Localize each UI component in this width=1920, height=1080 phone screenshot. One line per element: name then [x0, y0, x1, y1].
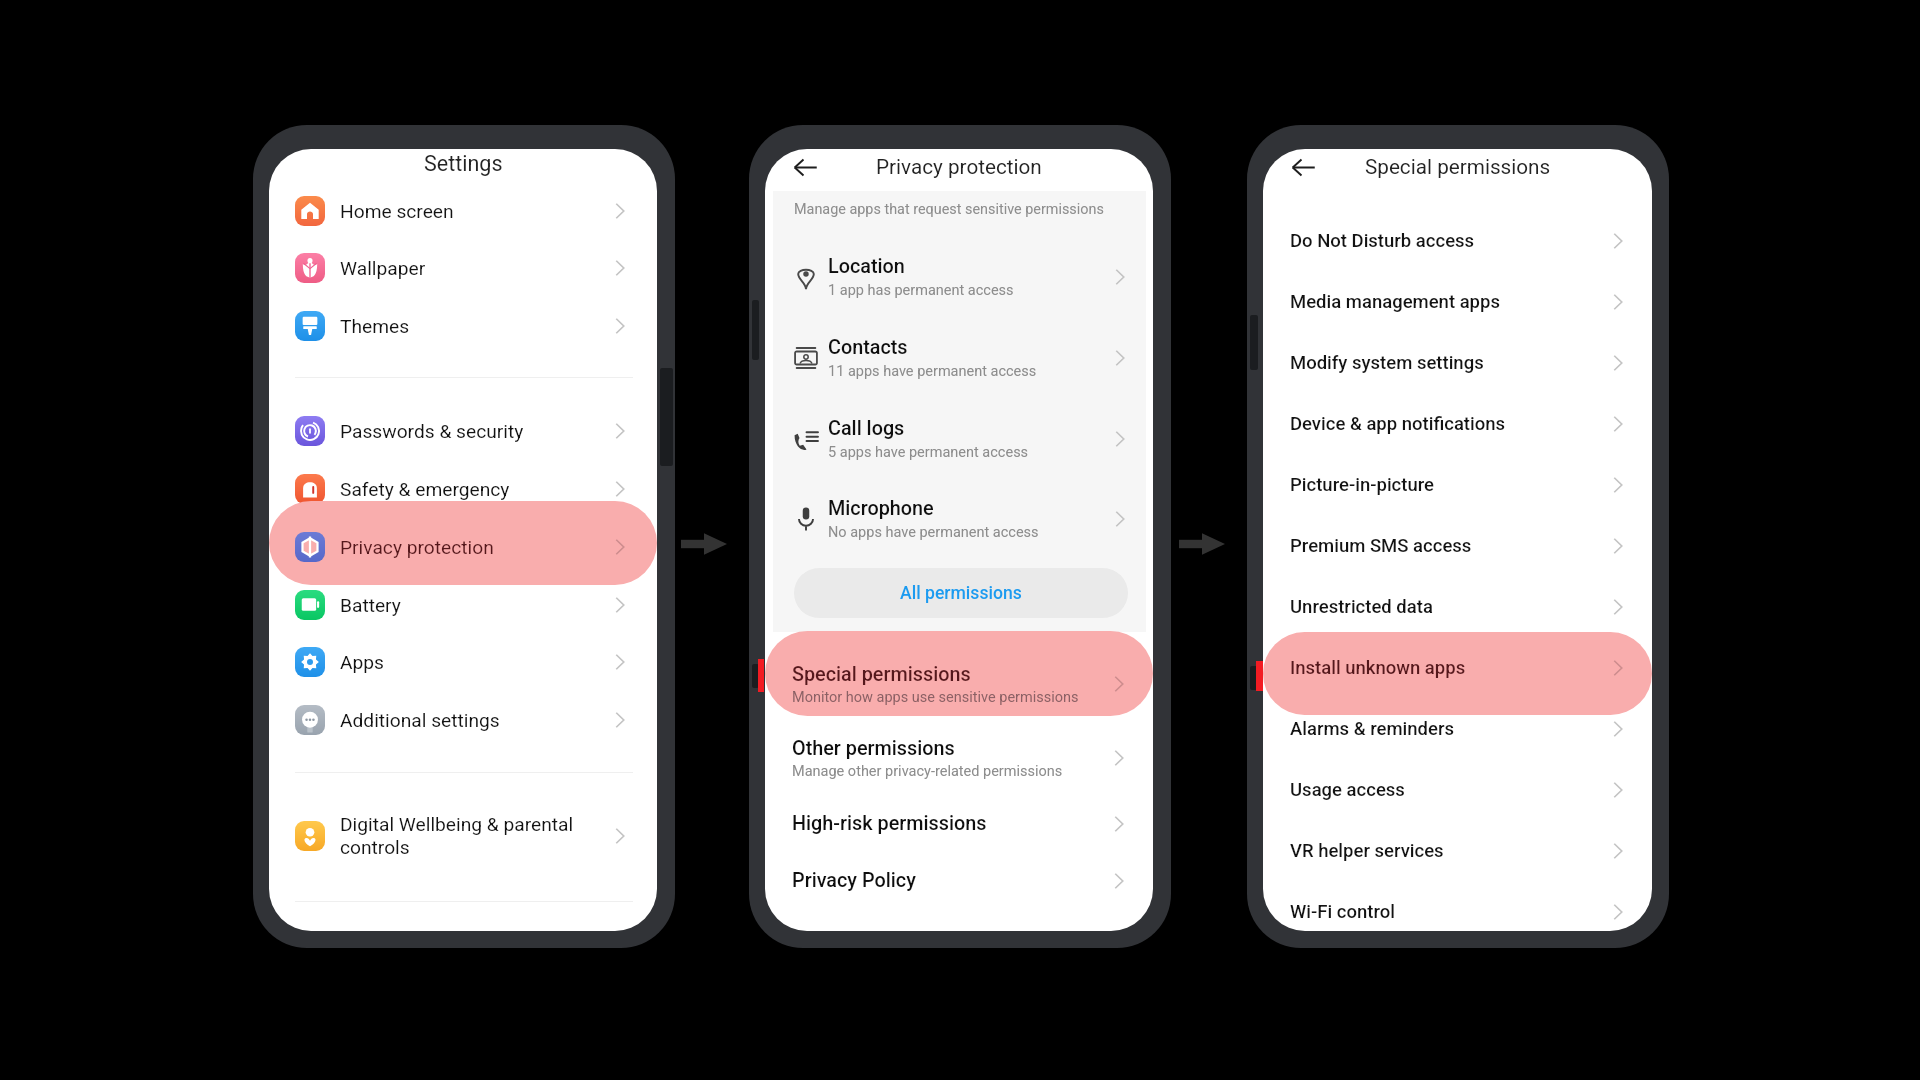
staticText: Usage access [1290, 779, 1607, 801]
staticText: Privacy protection [340, 536, 609, 559]
staticText: Do Not Disturb access [1290, 230, 1607, 252]
button[interactable]: Digital Wellbeing & parental controls [269, 807, 657, 865]
button[interactable]: All permissions [794, 568, 1128, 618]
staticText: Passwords & security [340, 420, 609, 443]
staticText: Wi-Fi control [1290, 901, 1607, 923]
button[interactable]: Call logs [765, 408, 1153, 470]
button[interactable]: Picture-in-picture [1263, 456, 1652, 514]
button[interactable]: Do Not Disturb access [1263, 212, 1652, 270]
button[interactable]: VR helper services [1263, 822, 1652, 880]
staticText: Safety & emergency [340, 478, 609, 501]
staticText: Monitor how apps use sensitive permissio… [792, 689, 1079, 706]
staticText: Themes [340, 315, 609, 338]
button[interactable]: Unrestricted data [1263, 578, 1652, 636]
staticText: High-risk permissions [792, 812, 1108, 835]
staticText: Battery [340, 594, 609, 617]
staticText: Digital Wellbeing & parental controls [340, 813, 609, 859]
button[interactable]: Privacy protection [269, 518, 657, 576]
staticText: Premium SMS access [1290, 535, 1607, 557]
button[interactable]: Wi-Fi control [1263, 883, 1652, 931]
staticText: Privacy protection [876, 155, 1042, 179]
button[interactable]: Modify system settings [1263, 334, 1652, 392]
button[interactable]: Back [791, 153, 819, 181]
staticText: Picture-in-picture [1290, 474, 1607, 496]
staticText: Apps [340, 651, 609, 674]
staticText: Additional settings [340, 709, 609, 732]
button[interactable]: Privacy Policy [765, 852, 1153, 909]
staticText: Wallpaper [340, 257, 609, 280]
button[interactable]: Apps [269, 633, 657, 691]
button[interactable]: Premium SMS access [1263, 517, 1652, 575]
button[interactable]: Install unknown apps [1263, 639, 1652, 697]
staticText: Alarms & reminders [1290, 718, 1607, 740]
staticText: Device & app notifications [1290, 413, 1607, 435]
staticText: Media management apps [1290, 291, 1607, 313]
staticText: Manage other privacy-related permissions [792, 763, 1063, 780]
button[interactable]: Contacts [765, 327, 1153, 389]
button[interactable]: Passwords & security [269, 402, 657, 460]
staticText: Contacts [828, 336, 908, 359]
staticText: 1 app has permanent access [828, 282, 1014, 299]
button[interactable]: High-risk permissions [765, 795, 1153, 852]
button[interactable]: Alarms & reminders [1263, 700, 1652, 758]
button[interactable]: Battery [269, 576, 657, 634]
staticText: 5 apps have permanent access [828, 444, 1029, 461]
staticText: Location [828, 255, 905, 278]
staticText: Unrestricted data [1290, 596, 1607, 618]
button[interactable]: Special permissions [765, 653, 1153, 715]
staticText: Privacy Policy [792, 869, 1108, 892]
button[interactable]: Device & app notifications [1263, 395, 1652, 453]
button[interactable]: Safety & emergency [269, 460, 657, 518]
staticText: Home screen [340, 200, 609, 223]
staticText: Call logs [828, 417, 905, 440]
button[interactable]: Wallpaper [269, 239, 657, 297]
button[interactable]: Additional settings [269, 691, 657, 749]
staticText: Other permissions [792, 737, 955, 760]
staticText: Modify system settings [1290, 352, 1607, 374]
button[interactable]: Home screen [269, 182, 657, 240]
button[interactable]: Themes [269, 297, 657, 355]
button[interactable]: Microphone [765, 488, 1153, 550]
staticText: Settings [424, 151, 503, 176]
staticText: Special permissions [792, 663, 971, 686]
button[interactable]: Other permissions [765, 727, 1153, 789]
button[interactable]: Usage access [1263, 761, 1652, 819]
staticText: Manage apps that request sensitive permi… [794, 201, 1104, 218]
staticText: VR helper services [1290, 840, 1607, 862]
staticText: All permissions [900, 583, 1022, 604]
staticText: 11 apps have permanent access [828, 363, 1037, 380]
button[interactable]: Media management apps [1263, 273, 1652, 331]
button[interactable]: Back [1289, 153, 1317, 181]
staticText: Install unknown apps [1290, 657, 1607, 679]
button[interactable]: Location [765, 246, 1153, 308]
staticText: Microphone [828, 497, 934, 520]
staticText: No apps have permanent access [828, 524, 1039, 541]
staticText: Special permissions [1365, 155, 1551, 179]
